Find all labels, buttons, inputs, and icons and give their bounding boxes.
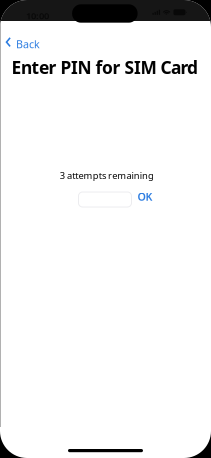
staticText: OK <box>137 189 152 204</box>
staticText: Back <box>16 37 40 51</box>
staticText: Enter PIN for SIM Card <box>11 56 198 79</box>
staticText: 10:00 <box>26 9 49 22</box>
button[interactable]: OK <box>133 188 157 204</box>
button[interactable]: Back <box>6 32 42 52</box>
staticText: 3 attempts remaining <box>60 169 154 182</box>
